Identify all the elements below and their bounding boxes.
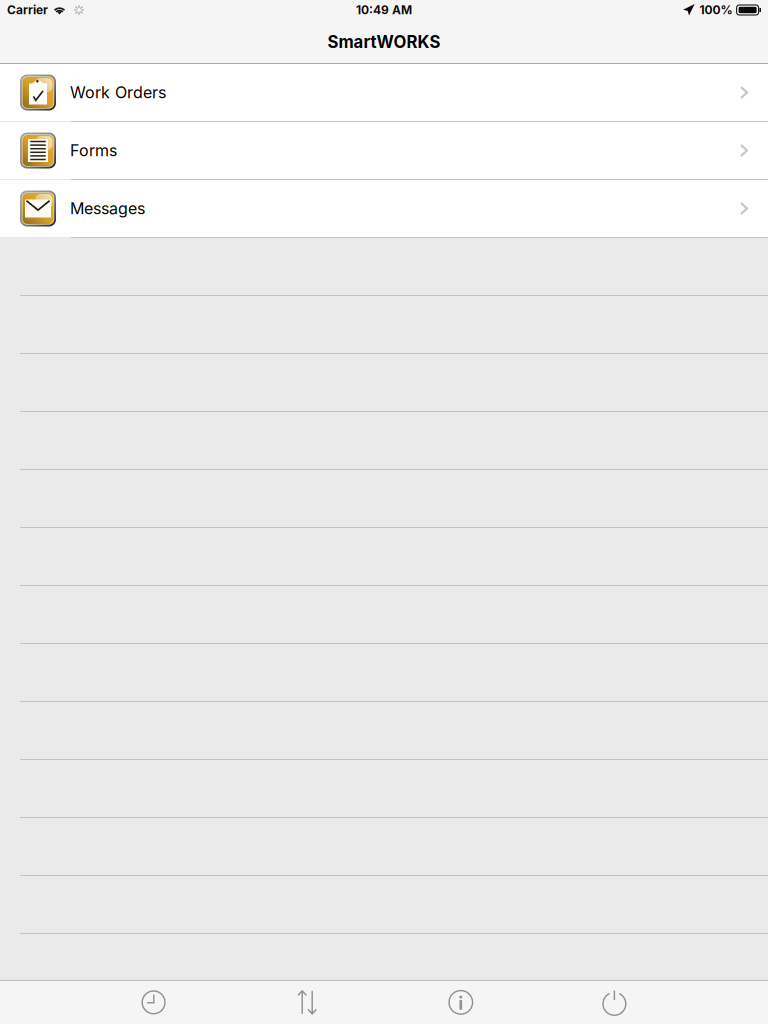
staticText: SmartWORKS — [327, 32, 440, 52]
button[interactable]: Work Orders — [0, 64, 768, 121]
button[interactable]: Recent — [124, 980, 184, 1024]
staticText: 100% — [700, 3, 733, 17]
staticText: 10:49 AM — [356, 3, 412, 17]
button[interactable]: Forms — [0, 122, 768, 179]
button[interactable]: Sync — [277, 980, 337, 1024]
staticText: Messages — [70, 199, 145, 218]
staticText: Work Orders — [70, 83, 166, 102]
staticText: Carrier — [7, 3, 48, 17]
button[interactable]: Messages — [0, 180, 768, 237]
button[interactable]: Info — [431, 980, 491, 1024]
staticText: Forms — [70, 141, 117, 160]
button[interactable]: Power — [584, 980, 644, 1024]
